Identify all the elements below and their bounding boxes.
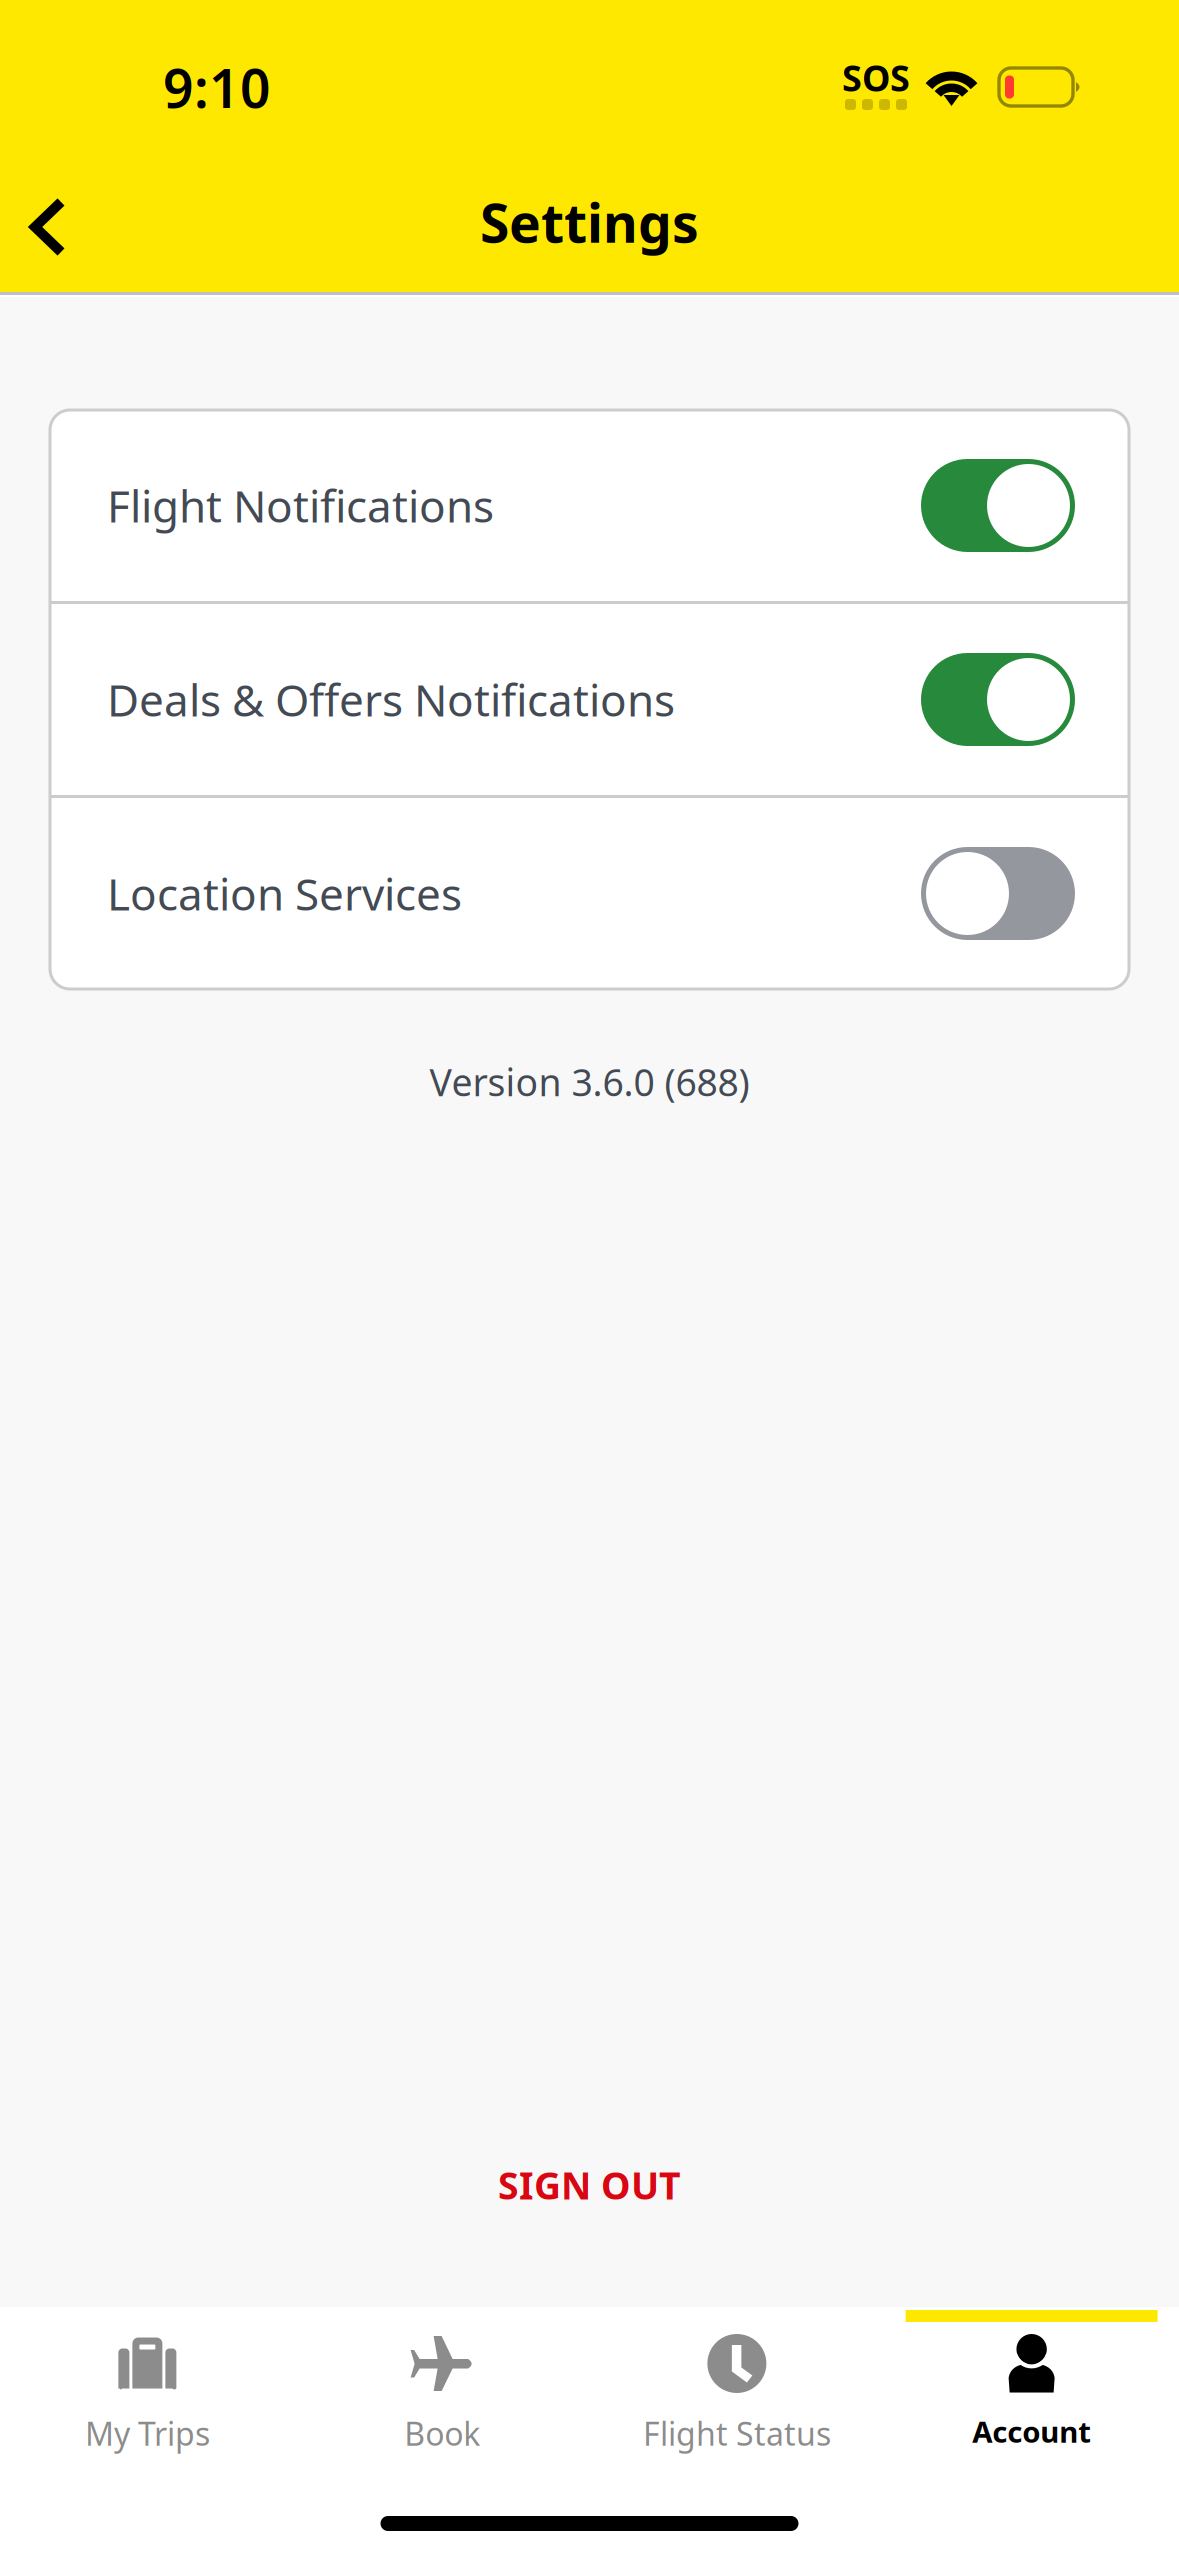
button[interactable]: Flight Notifications [50, 410, 1129, 601]
staticText: SOS [842, 54, 910, 101]
staticText: Settings [480, 187, 699, 257]
button[interactable]: Back [0, 168, 102, 292]
button[interactable]: Flight Status [589, 2307, 884, 2473]
button[interactable]: Account [884, 2307, 1179, 2473]
staticText: 9:10 [163, 52, 271, 123]
staticText: Location Services [107, 864, 462, 923]
button[interactable]: Location Services [50, 798, 1129, 989]
staticText: Deals & Offers Notifications [107, 670, 675, 729]
staticText: Account [972, 2412, 1091, 2451]
staticText: Book [404, 2412, 480, 2454]
button[interactable]: My Trips [0, 2307, 295, 2473]
button[interactable]: Book [295, 2307, 590, 2473]
button[interactable]: Deals & Offers Notifications [50, 604, 1129, 795]
button[interactable]: SIGN OUT [439, 2141, 739, 2229]
staticText: Version 3.6.0 (688) [429, 1057, 749, 1107]
staticText: Flight Notifications [107, 476, 494, 535]
staticText: SIGN OUT [498, 2160, 681, 2210]
staticText: My Trips [85, 2412, 210, 2454]
staticText: Flight Status [643, 2412, 831, 2454]
